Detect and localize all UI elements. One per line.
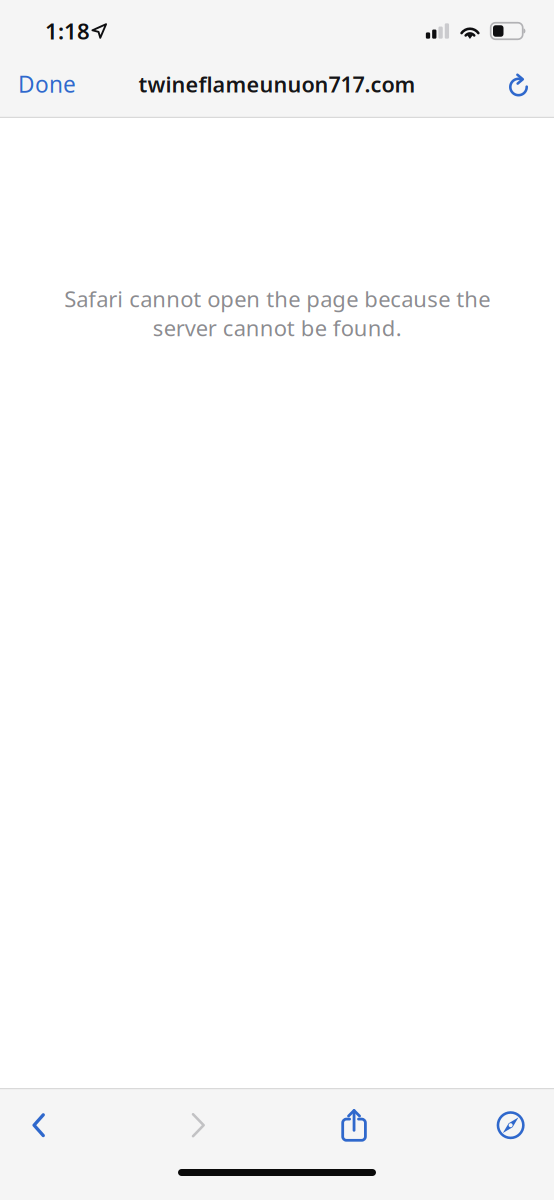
staticText: Done xyxy=(18,69,76,99)
staticText: 1:18 xyxy=(45,16,90,46)
button[interactable]: Share xyxy=(277,1089,415,1161)
staticText: Safari cannot open the page because the … xyxy=(64,284,490,342)
button[interactable]: Forward xyxy=(138,1089,277,1161)
staticText: twineflameunuon717.com xyxy=(138,70,415,98)
button[interactable]: Reload xyxy=(495,62,554,106)
button[interactable]: Open in Safari xyxy=(415,1089,554,1161)
button[interactable]: Back xyxy=(0,1089,138,1161)
button[interactable]: Done xyxy=(0,62,90,106)
